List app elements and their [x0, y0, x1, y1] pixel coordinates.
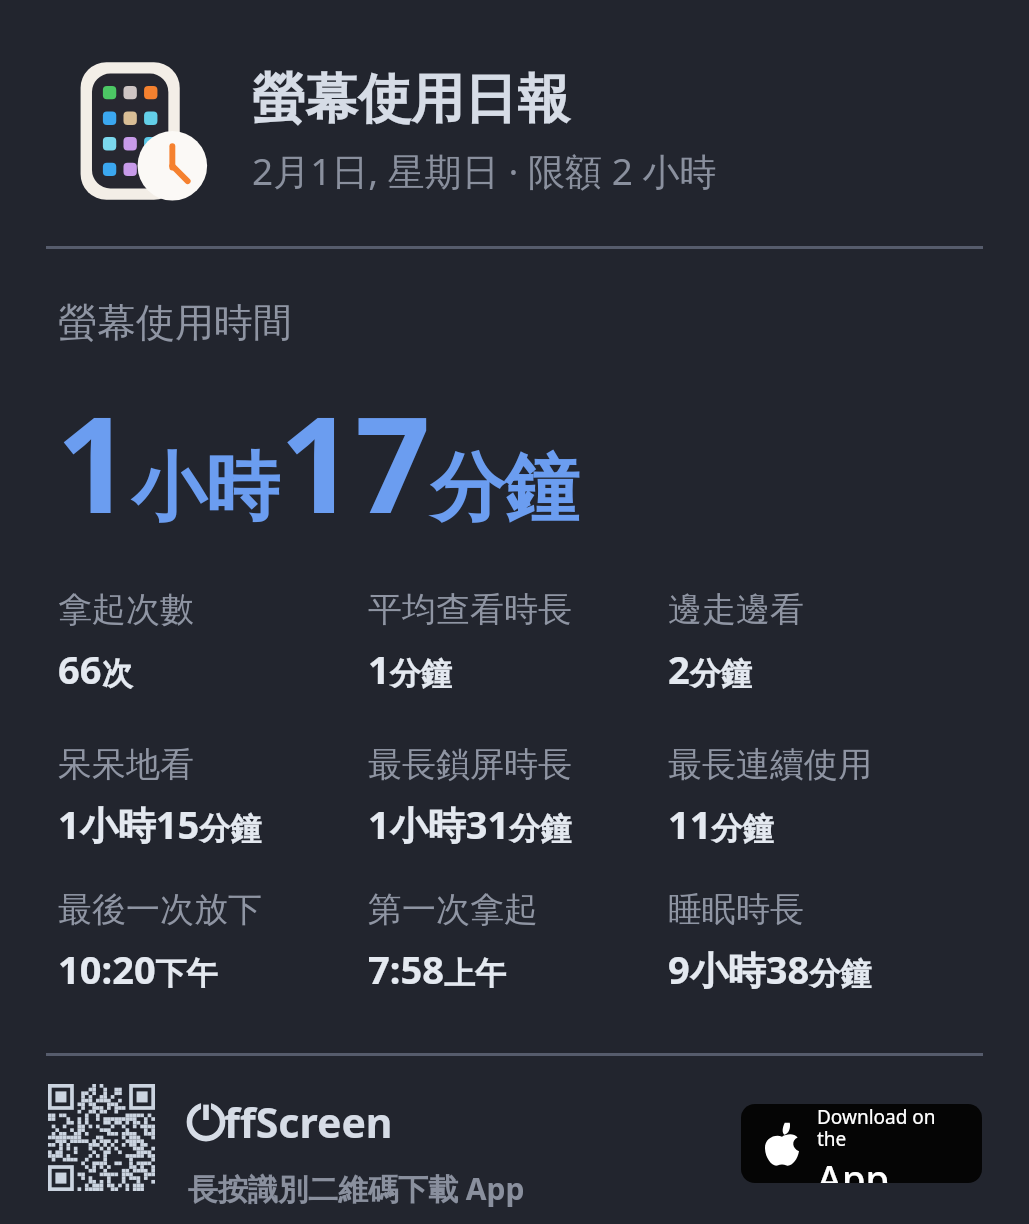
other: QR code — [48, 1084, 155, 1191]
staticText: 最長連續使用 — [668, 743, 872, 786]
staticText: 10:20下午 — [58, 943, 218, 995]
staticText: 第一次拿起 — [368, 888, 538, 931]
staticText: 最長鎖屏時長 — [368, 743, 572, 786]
button[interactable]: 平均查看時長 — [368, 588, 660, 706]
staticText: 平均查看時長 — [368, 588, 572, 631]
button[interactable]: 邊走邊看 — [668, 588, 960, 706]
staticText: 邊走邊看 — [668, 588, 804, 631]
staticText: 睡眠時長 — [668, 888, 804, 931]
button[interactable]: 拿起次數 — [58, 588, 350, 706]
staticText: 呆呆地看 — [58, 743, 194, 786]
staticText: Download on the — [817, 1104, 968, 1152]
staticText: 7:58上午 — [368, 943, 506, 995]
staticText: 1小時31分鐘 — [368, 798, 572, 850]
staticText: 1小時17分鐘 — [56, 372, 579, 552]
staticText: 2月1日, 星期日 · 限額 2 小時 — [252, 145, 717, 196]
other: OffScreen logo — [188, 1104, 224, 1140]
staticText: 9小時38分鐘 — [668, 943, 872, 995]
staticText: 螢幕使用日報 — [252, 66, 570, 133]
button[interactable]: 第一次拿起 — [368, 888, 660, 1006]
staticText: 拿起次數 — [58, 588, 194, 631]
button[interactable]: 呆呆地看 — [58, 743, 350, 861]
staticText: 1小時15分鐘 — [58, 798, 262, 850]
staticText: 11分鐘 — [668, 798, 774, 850]
button[interactable]: Download on the App Store — [741, 1104, 982, 1183]
button[interactable]: 最長連續使用 — [668, 743, 960, 861]
staticText: 1分鐘 — [368, 643, 452, 695]
button[interactable]: 睡眠時長 — [668, 888, 960, 1006]
staticText: 長按識別二維碼下載 App — [188, 1168, 525, 1209]
button[interactable]: 最後一次放下 — [58, 888, 350, 1006]
staticText: App Store — [817, 1152, 968, 1183]
staticText: 螢幕使用時間 — [58, 298, 292, 347]
staticText: 最後一次放下 — [58, 888, 262, 931]
button[interactable]: 最長鎖屏時長 — [368, 743, 660, 861]
button[interactable]: OffScreen app icon — [68, 46, 948, 216]
other: OffScreen app icon — [68, 57, 216, 205]
staticText: ffScreen — [224, 1094, 393, 1150]
staticText: 66次 — [58, 643, 133, 695]
staticText: 2分鐘 — [668, 643, 752, 695]
button[interactable]: OffScreen logo — [188, 1094, 525, 1209]
